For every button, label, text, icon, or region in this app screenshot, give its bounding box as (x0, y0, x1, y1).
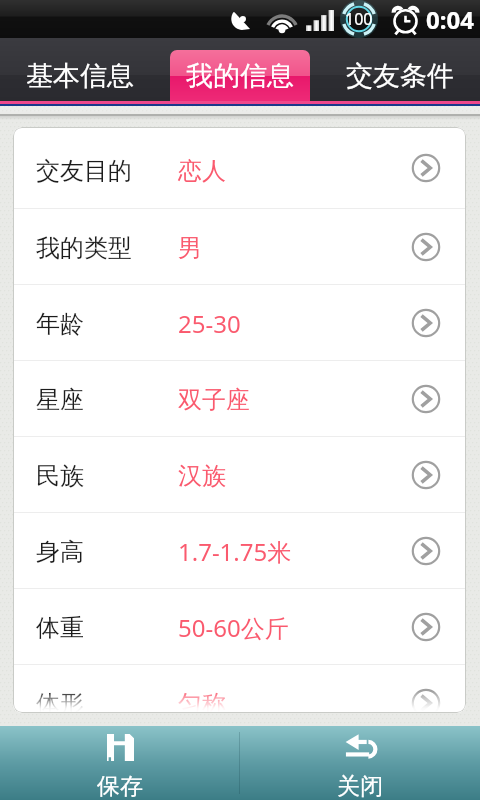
button[interactable]: Close (240, 726, 480, 800)
staticText: 体形 (36, 689, 178, 713)
button[interactable]: 体形 (13, 665, 466, 713)
staticText: 交友目的 (36, 156, 178, 186)
button[interactable]: 年龄 (13, 285, 466, 360)
button[interactable]: 民族 (13, 437, 466, 512)
button[interactable]: 体重 (13, 589, 466, 664)
staticText: 双子座 (178, 385, 250, 415)
staticText: 体重 (36, 613, 178, 643)
button[interactable]: 我的类型 (13, 209, 466, 284)
staticText: 关闭 (337, 772, 383, 800)
staticText: 年龄 (36, 309, 178, 339)
other: Save (107, 734, 134, 761)
button[interactable]: Save (0, 726, 240, 800)
staticText: 身高 (36, 537, 178, 567)
button[interactable]: 交友目的 (13, 127, 466, 208)
staticText: 我的类型 (36, 233, 178, 263)
staticText: 基本信息 (26, 59, 134, 93)
staticText: 星座 (36, 385, 178, 415)
button[interactable]: 身高 (13, 513, 466, 588)
button[interactable]: 星座 (13, 361, 466, 436)
staticText: 民族 (36, 461, 178, 491)
staticText: 1.7-1.75米 (178, 535, 292, 568)
staticText: 保存 (97, 772, 143, 800)
staticText: 我的信息 (186, 59, 294, 93)
staticText: 交友条件 (346, 59, 454, 93)
button[interactable]: 交友条件 (320, 38, 480, 101)
staticText: 100 (345, 8, 373, 30)
staticText: 恋人 (178, 156, 226, 186)
staticText: 25-30 (178, 307, 241, 340)
staticText: 0:04 (426, 3, 474, 36)
button[interactable]: 基本信息 (0, 38, 160, 101)
other: Close (345, 734, 376, 761)
staticText: 汉族 (178, 461, 226, 491)
staticText: 匀称 (178, 689, 226, 713)
staticText: 男 (178, 233, 202, 263)
staticText: 50-60公斤 (178, 611, 289, 644)
button[interactable]: 我的信息 (160, 38, 320, 101)
